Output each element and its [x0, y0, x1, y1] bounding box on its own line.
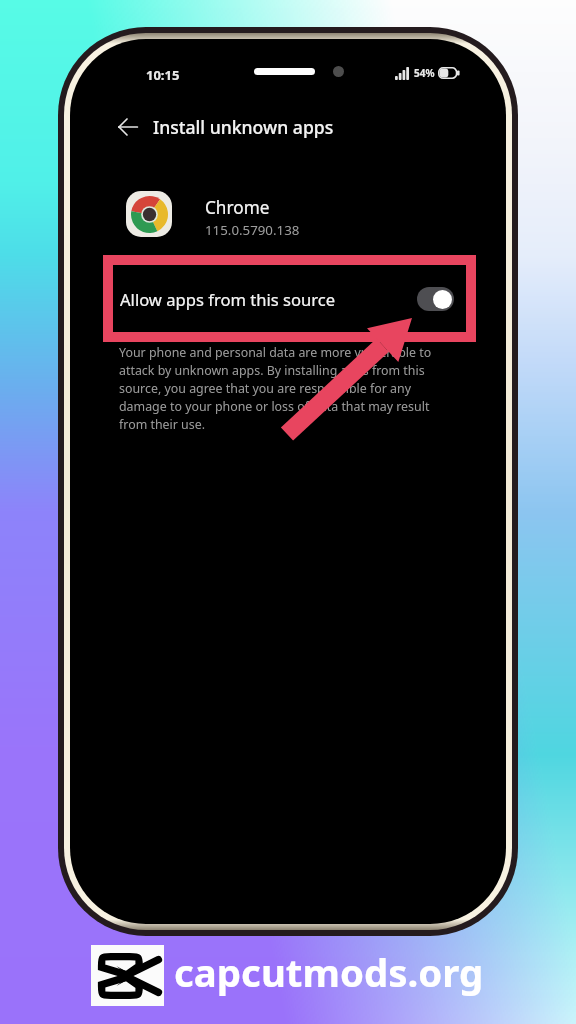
staticText: 115.0.5790.138 — [205, 221, 300, 239]
staticText: Install unknown apps — [153, 115, 334, 139]
button[interactable]: Navigate back — [108, 107, 148, 147]
staticText: Your phone and personal data are more vu… — [119, 344, 432, 433]
staticText: 54% — [414, 66, 435, 80]
staticText: capcutmods.org — [174, 946, 484, 998]
staticText: Allow apps from this source — [120, 288, 336, 311]
staticText: Chrome — [205, 196, 270, 219]
button[interactable]: Allow apps from this source — [109, 261, 454, 337]
staticText: 10:15 — [146, 66, 180, 84]
